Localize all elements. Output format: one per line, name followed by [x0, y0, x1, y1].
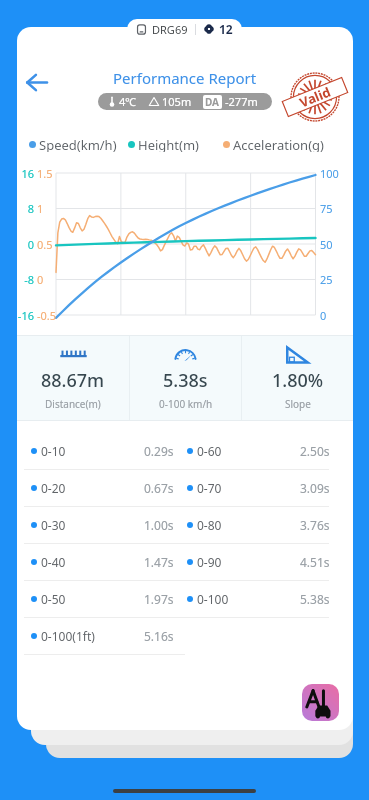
staticText: 0: [17, 237, 34, 252]
staticText: Performance Report: [113, 68, 257, 88]
button[interactable]: 88.67m: [17, 336, 129, 420]
staticText: 0-40: [41, 554, 66, 570]
staticText: 1.80%: [272, 368, 324, 393]
staticText: 0-30: [41, 517, 66, 533]
staticText: 1.00s: [144, 517, 174, 533]
button[interactable]: 0-30: [17, 507, 185, 544]
button[interactable]: 0-100(1ft): [17, 618, 185, 655]
staticText: Slope: [285, 397, 311, 411]
button[interactable]: 0-20: [17, 470, 185, 507]
staticText: 0-100: [197, 591, 229, 607]
staticText: 0: [320, 308, 350, 323]
staticText: Distance(m): [45, 397, 101, 411]
staticText: 16: [17, 166, 34, 181]
staticText: 3.76s: [300, 517, 330, 533]
staticText: 0-100 km/h: [159, 397, 213, 411]
staticText: DA: [205, 95, 220, 109]
staticText: 0-60: [197, 443, 222, 459]
staticText: -0.5: [37, 308, 61, 323]
staticText: 0.67s: [144, 480, 174, 496]
staticText: 5.16s: [144, 628, 174, 644]
staticText: 75: [320, 201, 350, 216]
staticText: 1.5: [37, 166, 61, 181]
staticText: 105m: [162, 94, 192, 109]
staticText: 0-20: [41, 480, 66, 496]
button[interactable]: 0-60: [185, 433, 353, 470]
staticText: 0-100(1ft): [41, 628, 95, 644]
button[interactable]: AI assistant: [299, 681, 342, 724]
staticText: 4℃: [119, 94, 137, 109]
staticText: Speed(km/h): [39, 136, 117, 152]
staticText: 5.38s: [300, 591, 330, 607]
staticText: 100: [320, 166, 350, 181]
staticText: 1: [37, 201, 61, 216]
staticText: Valid: [297, 83, 333, 111]
button[interactable]: 0-70: [185, 470, 353, 507]
button[interactable]: DRG69: [127, 19, 242, 39]
staticText: 4.51s: [300, 554, 330, 570]
button[interactable]: 5.38s: [130, 336, 241, 420]
button[interactable]: 0-90: [185, 544, 353, 581]
staticText: 0-70: [197, 480, 222, 496]
staticText: 25: [320, 272, 350, 287]
staticText: 88.67m: [41, 368, 105, 393]
button[interactable]: 1.80%: [242, 336, 353, 420]
staticText: 0-10: [41, 443, 66, 459]
staticText: 0-50: [41, 591, 66, 607]
staticText: 0-90: [197, 554, 222, 570]
button[interactable]: 0-40: [17, 544, 185, 581]
staticText: -277m: [225, 94, 258, 109]
staticText: Acceleration(g): [233, 136, 324, 152]
staticText: Height(m): [138, 136, 199, 152]
staticText: 8: [17, 201, 34, 216]
staticText: 12: [219, 21, 233, 37]
staticText: 5.38s: [163, 368, 208, 393]
button[interactable]: 0-80: [185, 507, 353, 544]
button[interactable]: Back: [17, 62, 57, 102]
button[interactable]: 0-100: [185, 581, 353, 618]
staticText: 1.97s: [144, 591, 174, 607]
staticText: -8: [17, 272, 34, 287]
staticText: 0.5: [37, 237, 61, 252]
staticText: 0-80: [197, 517, 222, 533]
button[interactable]: 0-50: [17, 581, 185, 618]
staticText: -16: [17, 308, 34, 323]
staticText: 2.50s: [300, 443, 330, 459]
staticText: 50: [320, 237, 350, 252]
staticText: DRG69: [152, 22, 188, 37]
staticText: 0.29s: [144, 443, 174, 459]
staticText: 0: [37, 272, 61, 287]
button[interactable]: 0-10: [17, 433, 185, 470]
staticText: 3.09s: [300, 480, 330, 496]
staticText: 1.47s: [144, 554, 174, 570]
